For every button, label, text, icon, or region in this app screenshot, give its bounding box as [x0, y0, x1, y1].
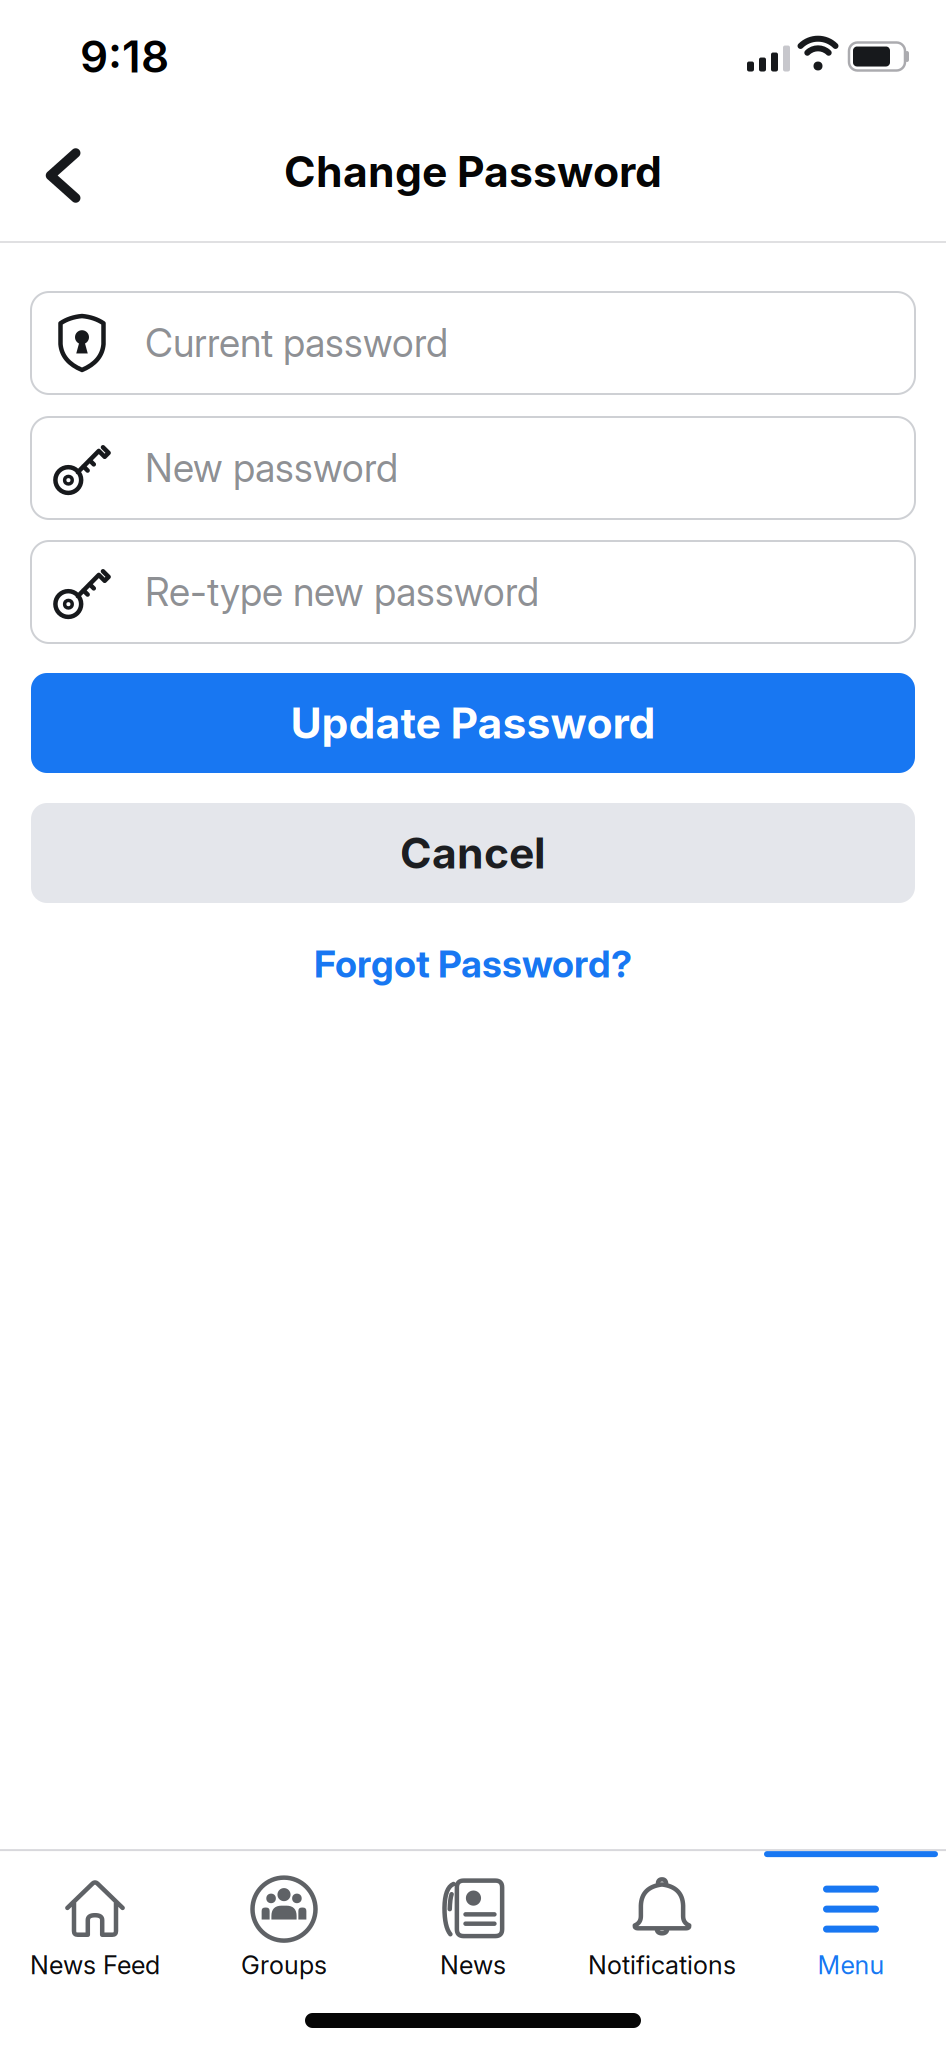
button[interactable]: News Feed — [0, 1879, 189, 1980]
button[interactable]: Groups — [189, 1879, 378, 1980]
staticText: Update Password — [290, 698, 655, 748]
button[interactable]: News — [378, 1879, 567, 1980]
staticText: Menu — [817, 1950, 884, 1980]
staticText: Current password — [145, 320, 448, 366]
staticText: News Feed — [30, 1950, 160, 1980]
button[interactable]: New password — [31, 417, 915, 519]
staticText: Cancel — [400, 828, 546, 878]
staticText: Groups — [241, 1950, 327, 1980]
button[interactable]: Re-type new password — [31, 541, 915, 643]
button[interactable]: Back — [0, 124, 112, 217]
button[interactable]: Cancel — [31, 803, 915, 903]
button[interactable]: Update Password — [31, 673, 915, 773]
staticText: Notifications — [588, 1950, 736, 1980]
staticText: Forgot Password? — [314, 942, 632, 986]
staticText: News — [440, 1950, 506, 1980]
button[interactable]: Menu — [756, 1879, 945, 1980]
staticText: Change Password — [284, 146, 662, 197]
button[interactable]: Forgot Password? — [314, 903, 632, 986]
button[interactable]: Notifications — [567, 1879, 756, 1980]
staticText: 9:18 — [80, 30, 169, 82]
staticText: Re-type new password — [145, 569, 539, 615]
staticText: New password — [145, 445, 398, 491]
button[interactable]: Current password — [31, 292, 915, 394]
